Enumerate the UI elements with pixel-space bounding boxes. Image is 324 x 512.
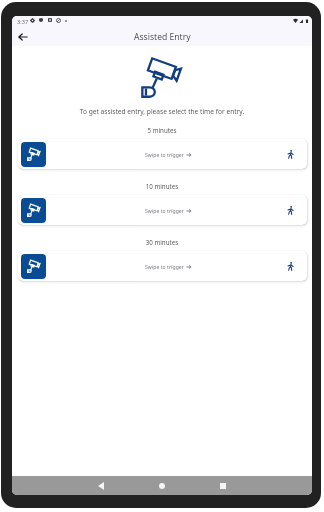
button[interactable]: Swipe to trigger [18,195,307,225]
button[interactable]: Home [154,478,170,494]
staticText: 10 minutes [12,182,312,190]
button[interactable]: Swipe to trigger [18,251,307,281]
staticText: 30 minutes [12,238,312,246]
button[interactable]: Swipe to trigger [18,139,307,169]
staticText: To get assisted entry, please select the… [12,107,312,116]
button[interactable]: Back [93,478,109,494]
staticText: Assisted Entry [134,31,191,43]
staticText: Swipe to trigger [145,207,184,214]
staticText: Swipe to trigger [145,151,184,158]
staticText: 3:37 [17,18,29,26]
staticText: 5 minutes [12,126,312,134]
button[interactable]: Recents [215,478,231,494]
button[interactable]: Back [14,28,31,45]
staticText: Swipe to trigger [145,263,184,270]
